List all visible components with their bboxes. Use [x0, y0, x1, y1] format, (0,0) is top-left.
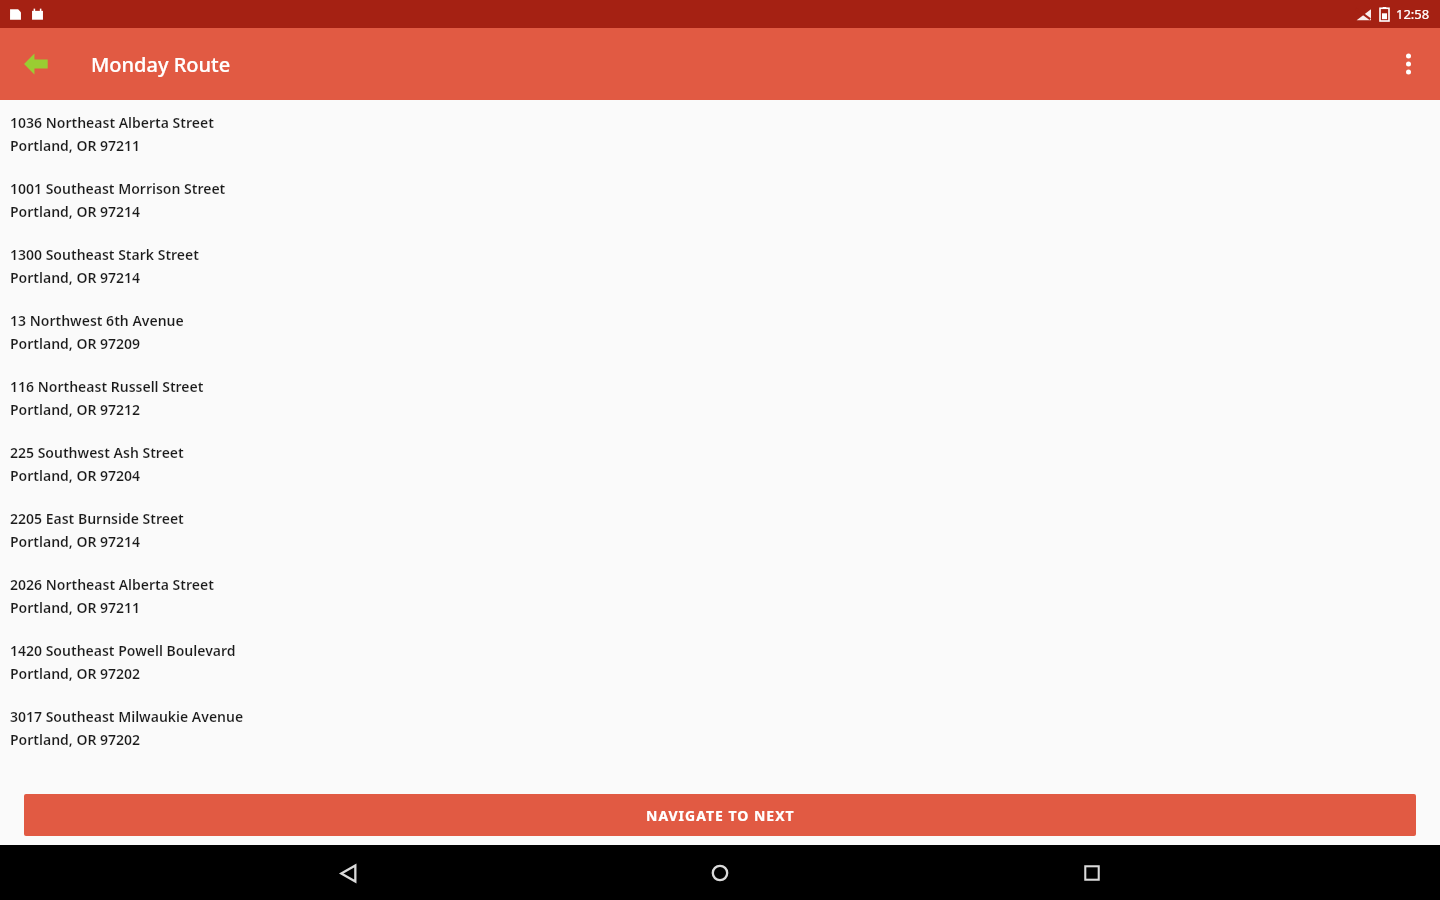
- button[interactable]: 3017 Southeast Milwaukie Avenue: [10, 707, 1430, 773]
- staticText: 1036 Northeast Alberta Street: [10, 113, 214, 132]
- button[interactable]: 225 Southwest Ash Street: [10, 443, 1430, 509]
- button[interactable]: Recents: [1068, 849, 1116, 897]
- staticText: 1300 Southeast Stark Street: [10, 245, 199, 264]
- staticText: NAVIGATE TO NEXT: [646, 806, 795, 825]
- staticText: 3017 Southeast Milwaukie Avenue: [10, 707, 244, 726]
- staticText: 2205 East Burnside Street: [10, 509, 184, 528]
- button[interactable]: 2026 Northeast Alberta Street: [10, 575, 1430, 641]
- staticText: 12:58: [1396, 5, 1430, 23]
- staticText: 1001 Southeast Morrison Street: [10, 179, 226, 198]
- button[interactable]: NAVIGATE TO NEXT: [24, 794, 1416, 836]
- button[interactable]: Back: [324, 849, 372, 897]
- staticText: Monday Route: [91, 51, 231, 78]
- staticText: Portland, OR 97212: [10, 400, 141, 419]
- button[interactable]: 13 Northwest 6th Avenue: [10, 311, 1430, 377]
- staticText: Portland, OR 97209: [10, 334, 141, 353]
- staticText: 1420 Southeast Powell Boulevard: [10, 641, 236, 660]
- button[interactable]: 2205 East Burnside Street: [10, 509, 1430, 575]
- staticText: 2026 Northeast Alberta Street: [10, 575, 214, 594]
- staticText: Portland, OR 97214: [10, 268, 141, 287]
- staticText: 225 Southwest Ash Street: [10, 443, 184, 462]
- staticText: Portland, OR 97202: [10, 664, 141, 683]
- button[interactable]: Back: [12, 40, 60, 88]
- button[interactable]: More options: [1384, 40, 1432, 88]
- button[interactable]: 1300 Southeast Stark Street: [10, 245, 1430, 311]
- staticText: 116 Northeast Russell Street: [10, 377, 204, 396]
- button[interactable]: Home: [696, 849, 744, 897]
- staticText: Portland, OR 97204: [10, 466, 141, 485]
- staticText: Portland, OR 97214: [10, 202, 141, 221]
- button[interactable]: 1036 Northeast Alberta Street: [10, 113, 1430, 179]
- staticText: Portland, OR 97211: [10, 136, 141, 155]
- staticText: Portland, OR 97211: [10, 598, 141, 617]
- staticText: Portland, OR 97202: [10, 730, 141, 749]
- staticText: Portland, OR 97214: [10, 532, 141, 551]
- button[interactable]: 116 Northeast Russell Street: [10, 377, 1430, 443]
- staticText: 13 Northwest 6th Avenue: [10, 311, 184, 330]
- button[interactable]: 1420 Southeast Powell Boulevard: [10, 641, 1430, 707]
- button[interactable]: 1001 Southeast Morrison Street: [10, 179, 1430, 245]
